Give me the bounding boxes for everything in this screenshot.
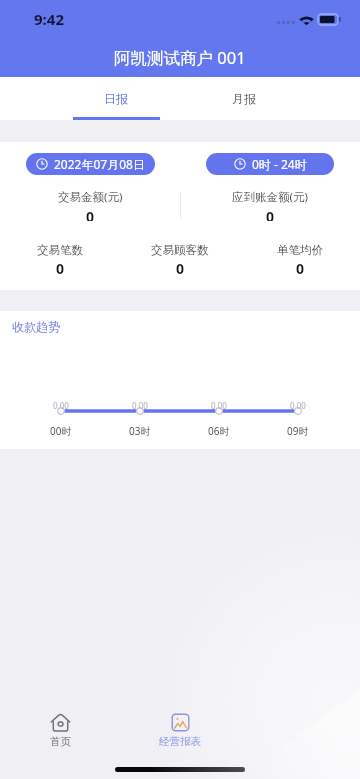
staticText: 月报 <box>232 91 256 106</box>
staticText: 交易金额(元) <box>58 189 123 205</box>
staticText: 首页 <box>50 735 71 748</box>
staticText: 0 <box>266 207 275 221</box>
staticText: 0 <box>86 207 95 221</box>
staticText: 0 <box>176 259 185 275</box>
staticText: 经营报表 <box>159 735 201 748</box>
staticText: 交易笔数 <box>37 243 83 257</box>
staticText: 06时 <box>208 424 230 438</box>
staticText: 2022年07月08日 <box>54 156 145 172</box>
staticText: 应到账金额(元) <box>232 189 308 205</box>
button[interactable]: 首页 <box>0 700 120 748</box>
staticText: 09时 <box>287 424 309 438</box>
staticText: 收款趋势 <box>12 319 60 334</box>
staticText: 日报 <box>104 91 128 106</box>
staticText: 0.00 <box>53 400 69 411</box>
button[interactable]: 经营报表 <box>120 700 240 748</box>
staticText: 0.00 <box>211 400 227 411</box>
staticText: 9:42 <box>34 9 64 29</box>
staticText: 00时 <box>50 424 72 438</box>
staticText: 0 <box>296 259 305 275</box>
staticText: 交易顾客数 <box>151 243 209 257</box>
staticText: 0时 - 24时 <box>252 156 307 172</box>
staticText: 单笔均价 <box>277 243 323 257</box>
staticText: 阿凯测试商户 001 <box>114 46 246 69</box>
button[interactable]: 日报 <box>52 77 180 120</box>
staticText: 0 <box>56 259 65 275</box>
button[interactable]: 月报 <box>180 77 308 120</box>
staticText: 0.00 <box>290 400 306 411</box>
staticText: 0.00 <box>132 400 148 411</box>
button[interactable]: 2022年07月08日 <box>26 153 155 175</box>
button[interactable]: 0时 - 24时 <box>206 153 334 175</box>
staticText: 03时 <box>129 424 151 438</box>
